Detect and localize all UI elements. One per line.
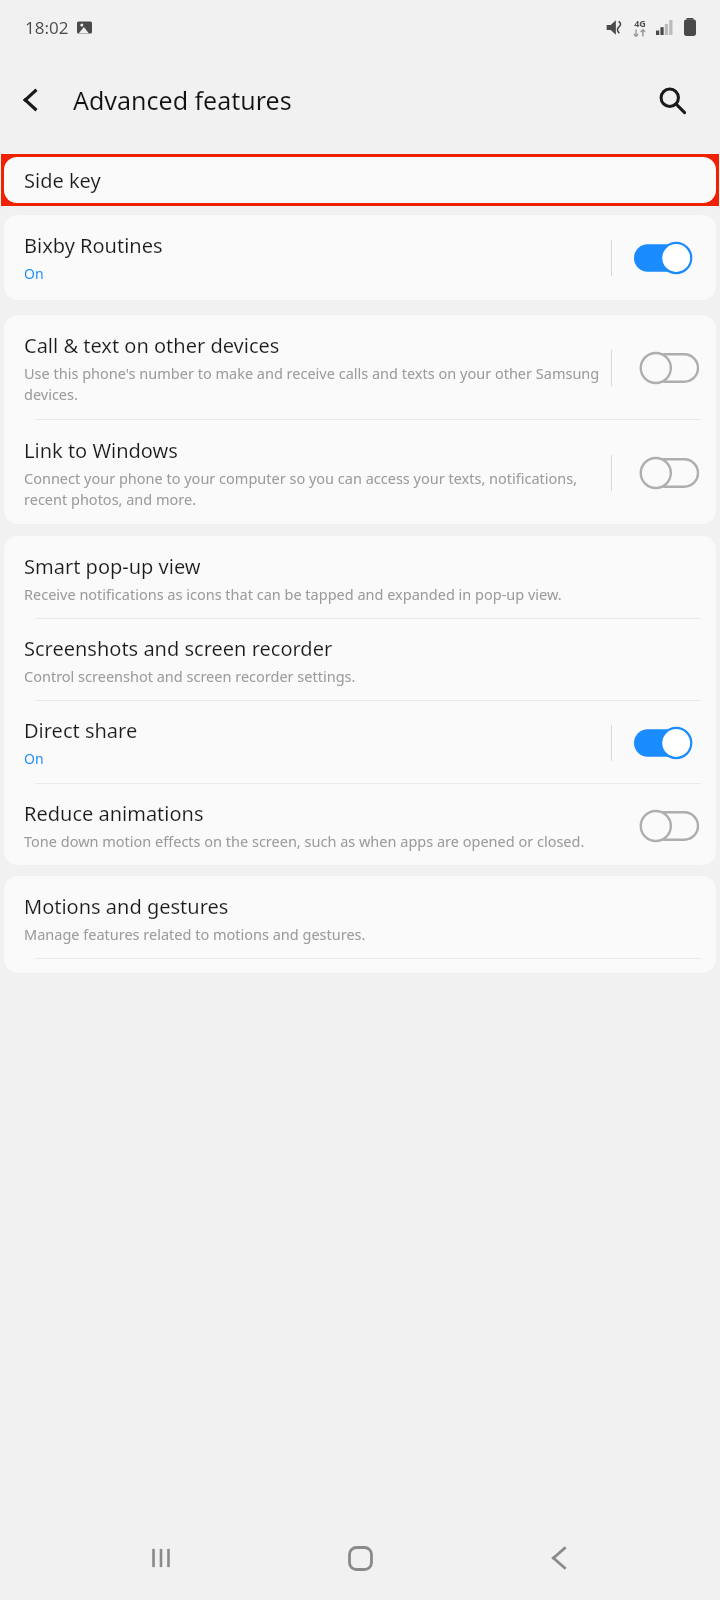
button[interactable]: Smart pop-up view [4, 536, 716, 618]
staticText: Use this phone's number to make and rece… [24, 363, 601, 404]
button[interactable]: Screenshots and screen recorder [4, 619, 716, 700]
staticText: On [24, 749, 44, 768]
staticText: Connect your phone to your computer so y… [24, 468, 601, 509]
button[interactable]: Switch on [634, 725, 698, 761]
button[interactable]: Search [644, 72, 700, 128]
staticText: Manage features related to motions and g… [24, 924, 366, 944]
staticText: Call & text on other devices [24, 332, 280, 359]
button[interactable]: Link to Windows [4, 420, 716, 524]
button[interactable]: Motions and gestures [4, 876, 716, 958]
staticText: Advanced features [73, 83, 292, 117]
staticText: Bixby Routines [24, 232, 163, 259]
staticText: Direct share [24, 717, 138, 744]
staticText: 18:02 [25, 16, 69, 39]
button[interactable]: Switch on [634, 240, 698, 276]
button[interactable]: Bixby Routines [4, 215, 716, 300]
staticText: Side key [24, 167, 101, 194]
button[interactable]: Direct share [4, 701, 716, 783]
button[interactable]: Switch off [634, 350, 698, 386]
button[interactable]: Switch off [634, 455, 698, 491]
staticText: 4G [634, 17, 646, 29]
button[interactable]: Home [322, 1520, 398, 1596]
staticText: Link to Windows [24, 437, 178, 464]
button[interactable]: Side key [4, 157, 716, 203]
staticText: Motions and gestures [24, 893, 229, 920]
staticText: Tone down motion effects on the screen, … [24, 831, 585, 851]
staticText: Control screenshot and screen recorder s… [24, 666, 356, 686]
button[interactable]: Call & text on other devices [4, 315, 716, 419]
button[interactable]: Switch off [634, 808, 698, 844]
button[interactable]: Reduce animations [4, 784, 716, 865]
staticText: Reduce animations [24, 800, 204, 827]
staticText: On [24, 264, 44, 283]
button[interactable]: Navigate up [0, 69, 62, 131]
button[interactable]: Back [521, 1520, 597, 1596]
button[interactable]: Recent apps [123, 1520, 199, 1596]
staticText: Smart pop-up view [24, 553, 201, 580]
staticText: Screenshots and screen recorder [24, 635, 333, 662]
staticText: Receive notifications as icons that can … [24, 584, 562, 604]
